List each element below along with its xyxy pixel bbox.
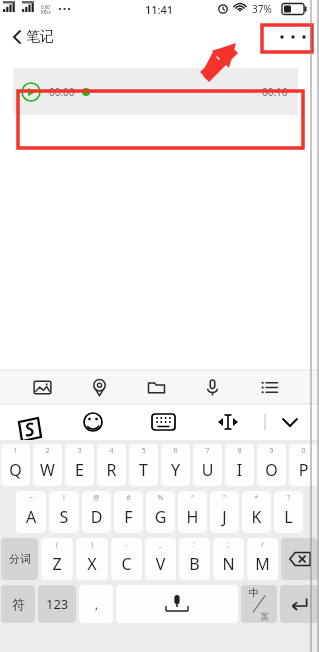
button[interactable]: Play: [13, 68, 298, 115]
staticText: Y: [161, 459, 190, 481]
staticText: I: [225, 459, 254, 481]
button[interactable]: *: [242, 491, 271, 533]
staticText: #: [114, 493, 143, 503]
button[interactable]: [82, 85, 255, 99]
staticText: Z: [41, 553, 73, 575]
staticText: 分词: [9, 552, 31, 566]
button[interactable]: 123: [38, 585, 76, 623]
staticText: P: [289, 459, 318, 481]
button[interactable]: Back: [0, 20, 34, 54]
staticText: D: [82, 506, 111, 528]
button[interactable]: /: [247, 538, 278, 580]
staticText: 7: [193, 446, 222, 456]
button[interactable]: 7: [193, 444, 222, 486]
staticText: H: [178, 506, 207, 528]
staticText: ?: [274, 493, 303, 503]
button[interactable]: Enter: [280, 585, 318, 623]
staticText: 1: [1, 446, 30, 456]
staticText: @: [82, 493, 111, 503]
button[interactable]: ?: [274, 491, 303, 533]
staticText: S: [49, 506, 79, 528]
button[interactable]: %: [146, 491, 175, 533]
button[interactable]: 分词: [1, 538, 38, 580]
staticText: 00:16: [262, 85, 288, 99]
button[interactable]: ，: [79, 585, 113, 623]
staticText: 11:41: [145, 2, 174, 17]
staticText: /: [247, 540, 278, 550]
button[interactable]: @: [82, 491, 111, 533]
button[interactable]: Play: [21, 82, 41, 102]
button[interactable]: Location: [84, 372, 114, 402]
staticText: :: [179, 540, 210, 550]
button[interactable]: Voice input: [197, 372, 227, 402]
staticText: -: [111, 540, 142, 550]
staticText: 英: [260, 611, 269, 622]
button[interactable]: Emoji: [65, 404, 130, 440]
button[interactable]: Keyboard: [130, 404, 195, 440]
staticText: A: [16, 506, 46, 528]
staticText: O: [257, 459, 286, 481]
button[interactable]: 4: [97, 444, 126, 486]
staticText: 123: [46, 595, 69, 613]
staticText: Q: [1, 459, 30, 481]
button[interactable]: 1: [1, 444, 30, 486]
staticText: 中: [249, 586, 259, 599]
button[interactable]: -: [111, 538, 142, 580]
button[interactable]: 5: [129, 444, 158, 486]
button[interactable]: Files: [141, 372, 171, 402]
staticText: ，: [90, 597, 102, 612]
button[interactable]: “: [178, 491, 207, 533]
button[interactable]: :: [179, 538, 210, 580]
staticText: ”: [210, 493, 239, 503]
staticText: 2: [33, 446, 62, 456]
button[interactable]: ”: [210, 491, 239, 533]
staticText: 5: [129, 446, 158, 456]
staticText: C: [111, 553, 142, 575]
button[interactable]: List: [254, 372, 284, 402]
button[interactable]: 8: [225, 444, 254, 486]
button[interactable]: Move cursor: [195, 404, 260, 440]
staticText: J: [210, 506, 239, 528]
staticText: T: [129, 459, 158, 481]
staticText: L: [274, 506, 303, 528]
button[interactable]: Space: [116, 585, 238, 623]
button[interactable]: _: [145, 538, 176, 580]
staticText: 3: [65, 446, 94, 456]
button[interactable]: ;: [213, 538, 244, 580]
staticText: N: [213, 553, 244, 575]
button[interactable]: Insert image: [27, 372, 57, 402]
staticText: E: [65, 459, 94, 481]
staticText: 37%: [252, 2, 272, 16]
button[interactable]: 0: [289, 444, 318, 486]
staticText: 符: [12, 596, 25, 612]
button[interactable]: Sogou input: [10, 404, 75, 440]
staticText: !: [49, 493, 79, 503]
button[interactable]: 符: [1, 585, 35, 623]
staticText: ): [76, 540, 108, 550]
button[interactable]: Switch language: [241, 585, 277, 623]
button[interactable]: 3: [65, 444, 94, 486]
button[interactable]: Backspace: [281, 538, 318, 580]
staticText: 9: [257, 446, 286, 456]
staticText: 0: [289, 446, 318, 456]
button[interactable]: 9: [257, 444, 286, 486]
button[interactable]: #: [114, 491, 143, 533]
staticText: 笔记: [26, 28, 54, 46]
button[interactable]: Hide keyboard: [274, 404, 319, 440]
button[interactable]: 2: [33, 444, 62, 486]
button[interactable]: ): [76, 538, 108, 580]
staticText: _: [145, 540, 176, 550]
button[interactable]: !: [49, 491, 79, 533]
staticText: 4: [97, 446, 126, 456]
staticText: 0.60 KB/s: [41, 4, 51, 15]
button[interactable]: (: [41, 538, 73, 580]
staticText: M: [247, 553, 278, 575]
staticText: 8: [225, 446, 254, 456]
button[interactable]: ~: [16, 491, 46, 533]
button[interactable]: More options: [274, 22, 314, 52]
staticText: G: [146, 506, 175, 528]
button[interactable]: 6: [161, 444, 190, 486]
staticText: 00:00: [49, 85, 75, 99]
staticText: ~: [16, 493, 46, 503]
staticText: ;: [213, 540, 244, 550]
